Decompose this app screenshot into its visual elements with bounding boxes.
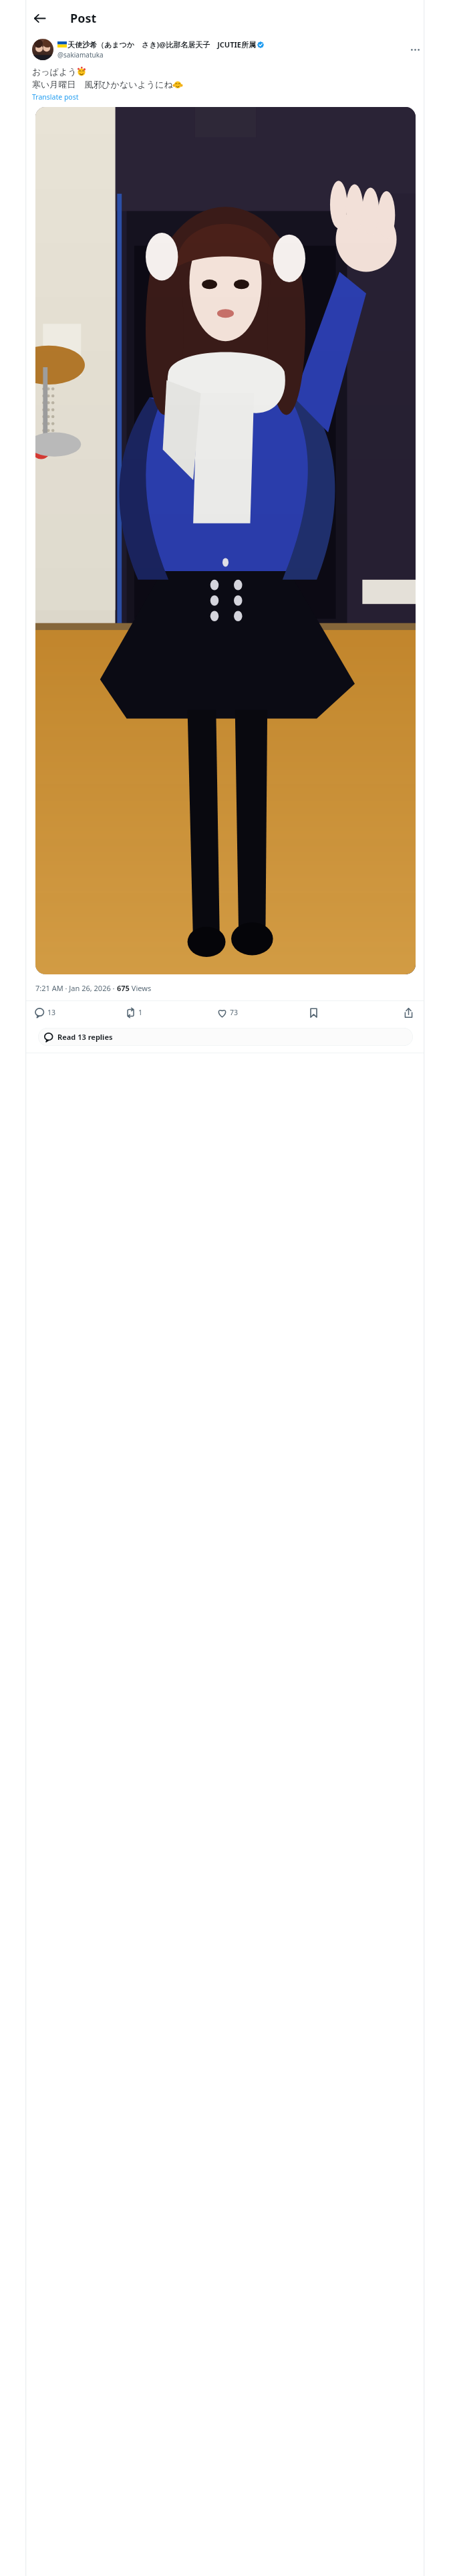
button[interactable]: Like (217, 1001, 309, 1024)
button[interactable]: Back (28, 7, 51, 29)
staticText: 7:21 AM · Jan 26, 2026 · (35, 983, 117, 993)
staticText: Post (70, 10, 97, 27)
staticText: 675 (117, 983, 130, 993)
staticText: 13 (47, 1008, 56, 1017)
button[interactable]: Image (35, 107, 416, 974)
staticText: Read 13 replies (57, 1032, 113, 1042)
staticText: おっぱよう (32, 66, 77, 77)
staticText: 1 (138, 1008, 143, 1017)
button[interactable]: Translate post (32, 92, 79, 102)
button[interactable]: Reply (35, 1001, 126, 1024)
button[interactable]: Share (400, 1004, 416, 1021)
staticText: @sakiamatuka (57, 50, 104, 60)
staticText: Translate post (32, 92, 79, 102)
button[interactable]: Bookmark (309, 1001, 400, 1024)
staticText: 寒い月曜日 風邪ひかないようにね (32, 78, 173, 90)
button[interactable]: Repost (126, 1001, 217, 1024)
button[interactable]: 天使沙希（あまつか さき)@比那名居天子 JCUTIE所属 (32, 36, 423, 63)
staticText: Views (130, 983, 152, 993)
staticText: 73 (230, 1008, 239, 1017)
staticText: 天使沙希（あまつか さき)@比那名居天子 JCUTIE所属 (67, 39, 256, 49)
button[interactable]: Read 13 replies (38, 1028, 413, 1046)
button[interactable]: More options (407, 41, 423, 58)
